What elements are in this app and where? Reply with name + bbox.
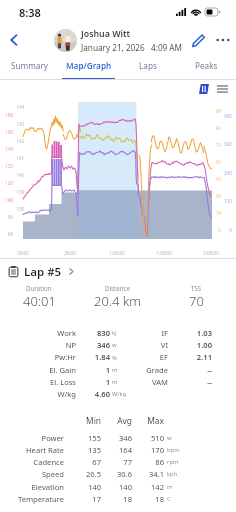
staticText: Peaks <box>195 60 218 71</box>
staticText: 164 <box>0 445 132 455</box>
staticText: 18 <box>0 494 132 504</box>
staticText: 156 <box>1 129 13 135</box>
staticText: EF <box>0 352 168 362</box>
staticText: 240 <box>221 170 232 176</box>
staticText: VAM <box>0 377 168 387</box>
staticText: 26.5 <box>0 469 101 479</box>
staticText: 346 <box>0 340 110 350</box>
staticText: Joshua Witt <box>81 28 131 40</box>
staticText: Work <box>0 328 76 338</box>
staticText: 56 <box>213 159 221 165</box>
staticText: January 21, 2026 <box>81 42 145 53</box>
staticText: Cadence <box>0 457 64 467</box>
staticText: 135 <box>0 445 101 455</box>
staticText: Map/Graph <box>66 60 112 71</box>
staticText: 830 <box>0 328 110 338</box>
staticText: 1:30:00 <box>154 250 174 256</box>
staticText: 142 <box>14 138 24 144</box>
staticText: -- <box>0 377 212 387</box>
staticText: 67 <box>0 457 101 467</box>
staticText: 77 <box>0 457 132 467</box>
staticText: 132 <box>1 163 13 169</box>
staticText: 144 <box>14 104 24 110</box>
staticText: El. Gain <box>0 365 76 375</box>
staticText: 140 <box>0 482 132 492</box>
staticText: bpm <box>167 446 180 454</box>
staticText: VI <box>0 340 168 350</box>
staticText: 141 <box>14 155 24 161</box>
button[interactable]: Lap #5 <box>0 259 236 284</box>
staticText: 139 <box>14 189 24 195</box>
staticText: 40:01 <box>23 292 56 310</box>
button[interactable]: Chart layers <box>196 81 212 97</box>
staticText: 140 <box>14 172 24 178</box>
staticText: 4.60 <box>0 389 110 399</box>
staticText: El. Loss <box>0 377 76 387</box>
staticText: 108 <box>1 197 13 203</box>
staticText: 0 <box>221 227 232 233</box>
staticText: Heart Rate <box>0 445 64 455</box>
staticText: 30.6 <box>0 469 132 479</box>
button[interactable]: Map/Graph <box>59 56 118 80</box>
staticText: Distance <box>105 284 131 292</box>
staticText: 20.4 km <box>94 292 141 310</box>
staticText: 70 <box>213 142 221 148</box>
staticText: 0 <box>213 227 221 233</box>
staticText: 96 <box>1 214 13 220</box>
button[interactable]: More options <box>210 24 236 56</box>
staticText: 34.1 <box>0 469 164 479</box>
button[interactable]: Summary <box>0 56 59 80</box>
staticText: C <box>167 495 171 503</box>
staticText: 360 <box>221 141 232 147</box>
staticText: 480 <box>221 113 232 119</box>
staticText: 00:00 <box>13 250 33 256</box>
staticText: 98 <box>213 108 221 114</box>
staticText: 8:38 <box>19 5 41 20</box>
button[interactable]: Laps <box>118 56 177 80</box>
staticText: kph <box>167 470 178 478</box>
staticText: 84 <box>213 125 221 131</box>
staticText: m <box>112 366 118 374</box>
staticText: Elevation <box>0 482 64 492</box>
staticText: Min <box>0 415 101 426</box>
staticText: 28 <box>213 193 221 199</box>
staticText: Max <box>0 415 164 426</box>
staticText: Summary <box>11 60 49 71</box>
staticText: 2.11 <box>0 352 212 362</box>
staticText: m <box>112 378 118 386</box>
staticText: 1:00:00 <box>107 250 127 256</box>
button[interactable]: Menu <box>214 81 230 97</box>
staticText: 142 <box>0 482 164 492</box>
staticText: -- <box>0 365 212 375</box>
staticText: 144 <box>1 146 13 152</box>
staticText: 1 <box>0 377 110 387</box>
staticText: Avg <box>0 415 132 426</box>
staticText: 346 <box>0 433 132 443</box>
staticText: m <box>167 483 173 491</box>
staticText: 1.00 <box>0 340 212 350</box>
staticText: % <box>112 354 117 362</box>
staticText: rpm <box>167 458 179 466</box>
staticText: 120 <box>221 198 232 204</box>
staticText: 17 <box>0 494 101 504</box>
staticText: Power <box>0 433 64 443</box>
staticText: 18 <box>0 494 164 504</box>
staticText: 70 <box>189 292 204 310</box>
staticText: 86 <box>0 457 164 467</box>
button[interactable]: Edit <box>186 24 210 56</box>
staticText: Speed <box>0 469 64 479</box>
button[interactable]: Back <box>0 24 28 56</box>
staticText: 143 <box>14 121 24 127</box>
staticText: Duration <box>26 284 52 292</box>
staticText: kJ <box>112 329 117 337</box>
button[interactable]: Peaks <box>177 56 236 80</box>
staticText: Laps <box>139 60 157 71</box>
staticText: Temperature <box>0 494 64 504</box>
staticText: 168 <box>1 112 13 118</box>
staticText: NP <box>0 340 76 350</box>
staticText: Grade <box>0 365 168 375</box>
staticText: W/kg <box>112 390 127 398</box>
staticText: w <box>112 341 117 349</box>
staticText: 14 <box>213 210 221 216</box>
staticText: 140 <box>0 482 101 492</box>
